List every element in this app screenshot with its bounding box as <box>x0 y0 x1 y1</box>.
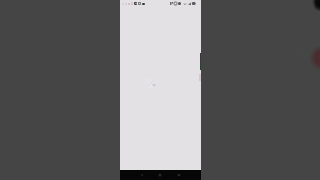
button[interactable]: Home <box>157 172 163 178</box>
button[interactable]: Edge panel <box>200 53 201 66</box>
button[interactable]: Recent apps <box>176 172 182 178</box>
button[interactable]: Back <box>139 172 145 178</box>
